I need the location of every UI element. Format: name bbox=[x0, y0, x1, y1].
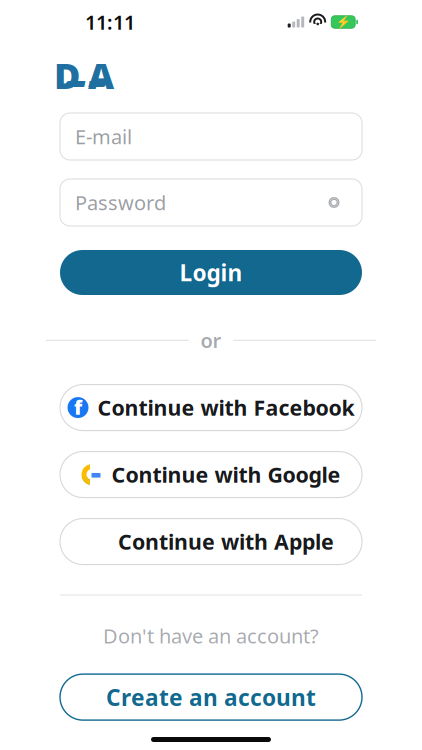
staticText: Continue with Facebook bbox=[97, 393, 354, 422]
button[interactable]: f bbox=[60, 385, 362, 431]
staticText: Password bbox=[75, 189, 166, 216]
staticText: Don't have an account? bbox=[103, 623, 319, 649]
button[interactable] bbox=[60, 519, 362, 565]
button[interactable]: Login bbox=[60, 250, 362, 295]
staticText: Continue with Google bbox=[111, 460, 340, 489]
staticText: ⚡ bbox=[336, 15, 351, 29]
staticText: or bbox=[200, 327, 221, 354]
button[interactable]: Create an account bbox=[60, 674, 362, 720]
staticText: A bbox=[88, 51, 114, 99]
staticText: Create an account bbox=[106, 682, 316, 712]
staticText: E-mail bbox=[75, 123, 132, 150]
staticText: Continue with Apple bbox=[118, 527, 334, 556]
button[interactable]: Show password bbox=[321, 191, 347, 213]
staticText: ) bbox=[80, 54, 91, 96]
staticText: Login bbox=[179, 257, 242, 287]
staticText: f bbox=[74, 394, 82, 420]
button[interactable]: Continue with Google bbox=[60, 452, 362, 498]
staticText: D bbox=[54, 51, 80, 99]
staticText: 11:11 bbox=[85, 9, 135, 35]
